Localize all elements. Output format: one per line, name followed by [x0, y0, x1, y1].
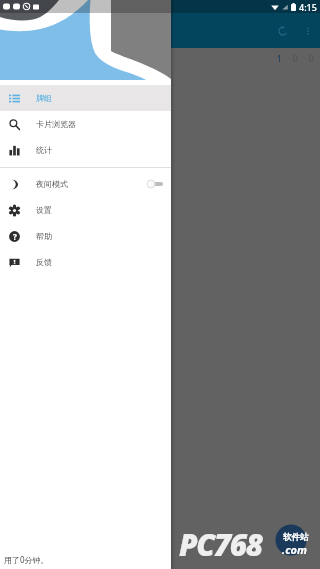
staticText: ? — [13, 231, 17, 242]
staticText: 统计 — [36, 145, 52, 155]
staticText: 1 — [277, 53, 282, 64]
button[interactable]: Sync — [269, 17, 296, 44]
button[interactable]: 设置 — [0, 197, 171, 223]
staticText: 软件站 — [283, 532, 309, 543]
button[interactable]: 反馈 — [0, 249, 171, 275]
button[interactable]: More options — [296, 19, 319, 42]
button[interactable]: 统计 — [0, 137, 171, 163]
staticText: .com — [282, 542, 307, 557]
staticText: 牌组 — [36, 93, 52, 103]
staticText: 夜间模式 — [36, 179, 68, 189]
staticText: 帮助 — [36, 231, 52, 241]
staticText: 卡片浏览器 — [36, 119, 76, 129]
button[interactable]: 夜间模式 — [0, 171, 171, 197]
button[interactable]: ? — [0, 223, 171, 249]
staticText: 4:15 — [299, 1, 317, 13]
staticText: 0 — [293, 53, 298, 64]
staticText: 反馈 — [36, 257, 52, 267]
staticText: 设置 — [36, 205, 52, 215]
button[interactable]: 卡片浏览器 — [0, 111, 171, 137]
staticText: 0 — [309, 53, 314, 64]
staticText: PC768 — [179, 524, 262, 565]
staticText: 用了0分钟。 — [4, 554, 49, 565]
button[interactable]: 牌组 — [0, 85, 171, 111]
